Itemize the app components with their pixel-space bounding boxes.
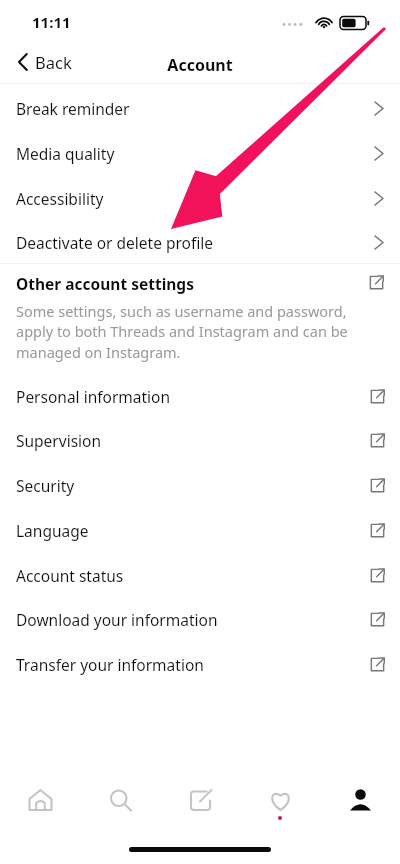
staticText: Some settings, such as username and pass… xyxy=(16,301,386,363)
staticText: Download your information xyxy=(16,609,218,630)
button[interactable]: Security xyxy=(0,465,400,505)
staticText: 11:11 xyxy=(32,12,71,32)
button[interactable]: Download your information xyxy=(0,599,400,639)
staticText: Other account settings xyxy=(16,273,194,294)
button[interactable]: Account status xyxy=(0,555,400,595)
staticText: Security xyxy=(16,475,75,496)
button[interactable]: Language xyxy=(0,510,400,550)
button[interactable]: Break reminder xyxy=(0,86,400,130)
button[interactable]: Personal information xyxy=(0,376,400,416)
staticText: Break reminder xyxy=(16,98,130,119)
button[interactable]: Activity xyxy=(248,776,312,824)
staticText: Personal information xyxy=(16,386,171,407)
button[interactable]: Transfer your information xyxy=(0,644,400,684)
staticText: Account xyxy=(0,54,400,76)
button[interactable]: Accessibility xyxy=(0,176,400,220)
button[interactable]: Home xyxy=(8,776,72,824)
button[interactable]: Supervision xyxy=(0,420,400,460)
button[interactable]: Back xyxy=(8,46,82,78)
button[interactable]: New thread xyxy=(168,776,232,824)
staticText: Back xyxy=(35,51,72,73)
button[interactable]: Deactivate or delete profile xyxy=(0,220,400,264)
staticText: Supervision xyxy=(16,430,102,451)
button[interactable]: Other account settings xyxy=(0,268,400,298)
staticText: Language xyxy=(16,520,89,541)
staticText: Media quality xyxy=(16,143,115,164)
staticText: Account status xyxy=(16,565,124,586)
staticText: Accessibility xyxy=(16,188,104,209)
staticText: Deactivate or delete profile xyxy=(16,232,213,253)
button[interactable]: Search xyxy=(88,776,152,824)
button[interactable]: Profile xyxy=(328,776,392,824)
staticText: Transfer your information xyxy=(16,654,204,675)
button[interactable]: Media quality xyxy=(0,131,400,175)
